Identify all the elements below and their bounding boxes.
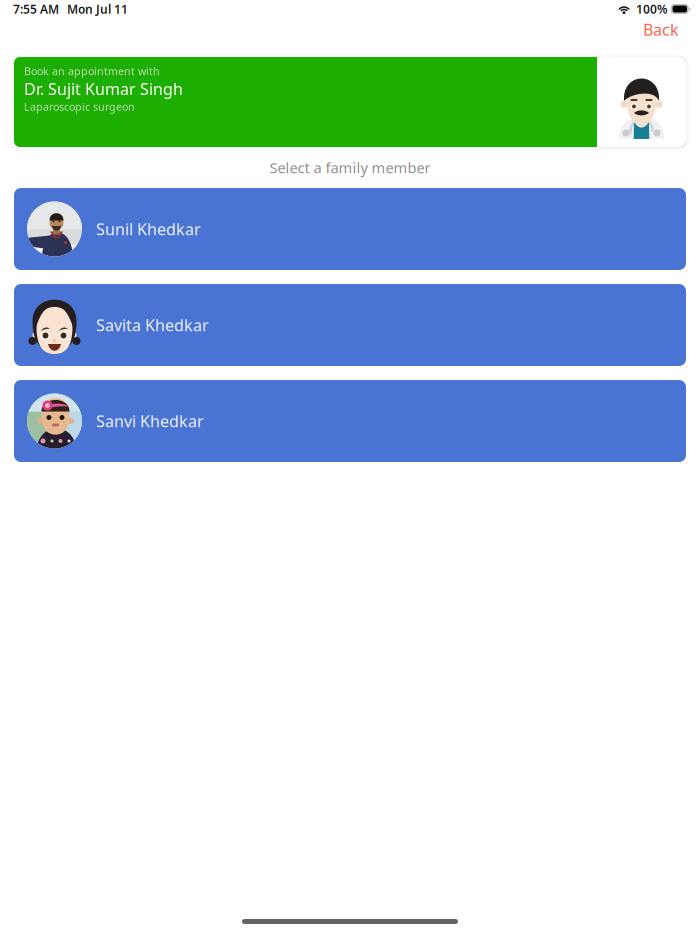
staticText: Mon Jul 11 (67, 1, 128, 17)
staticText: Dr. Sujit Kumar Singh (24, 78, 183, 99)
staticText: Select a family member (269, 158, 430, 177)
staticText: Sanvi Khedkar (96, 410, 204, 432)
staticText: Book an appointment with (24, 64, 160, 78)
staticText: 7:55 AM (13, 1, 59, 17)
staticText: Back (643, 19, 679, 40)
staticText: Savita Khedkar (96, 314, 209, 336)
button[interactable]: Sunil Khedkar (14, 188, 686, 270)
button[interactable]: Sanvi Khedkar (14, 380, 686, 462)
button[interactable]: Back (635, 17, 687, 50)
staticText: Laparoscopic surgeon (24, 99, 135, 114)
staticText: 100% (636, 1, 668, 17)
staticText: Sunil Khedkar (96, 218, 201, 240)
button[interactable]: Savita Khedkar (14, 284, 686, 366)
button[interactable]: Book an appointment with (14, 57, 686, 147)
